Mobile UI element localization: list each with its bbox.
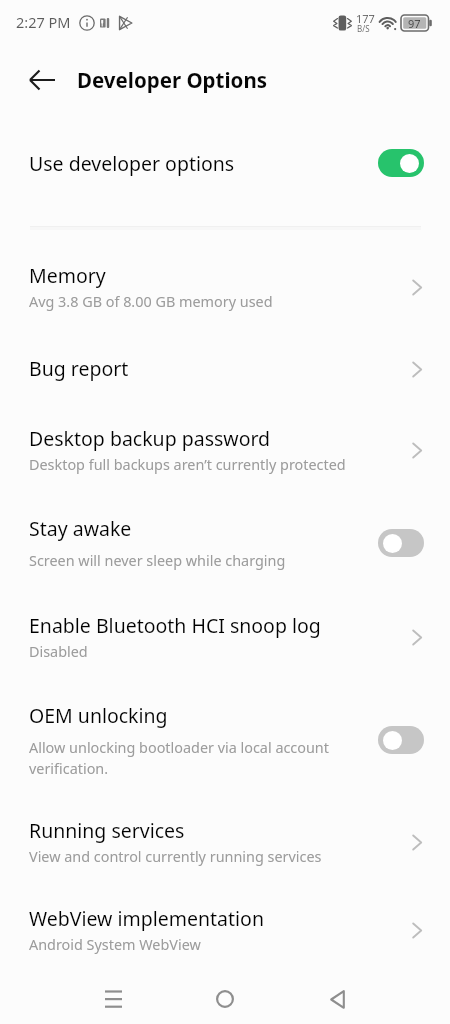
- staticText: Screen will never sleep while charging: [29, 551, 286, 571]
- button[interactable]: Use developer options: [0, 131, 450, 195]
- staticText: Allow unlocking bootloader via local acc…: [29, 738, 329, 778]
- button[interactable]: Enable Bluetooth HCI snoop log: [0, 600, 450, 674]
- staticText: Memory: [29, 262, 106, 289]
- button[interactable]: Recent apps: [85, 971, 141, 1024]
- staticText: Enable Bluetooth HCI snoop log: [29, 612, 321, 639]
- button[interactable]: Desktop backup password: [0, 413, 450, 487]
- button[interactable]: Stay awake: [0, 503, 450, 583]
- staticText: Developer Options: [77, 66, 268, 94]
- staticText: View and control currently running servi…: [29, 847, 322, 867]
- button[interactable]: Home: [197, 971, 253, 1024]
- staticText: OEM unlocking: [29, 702, 168, 729]
- button[interactable]: Switch off: [378, 529, 424, 557]
- staticText: B/S: [357, 23, 370, 34]
- button[interactable]: Bug report: [0, 343, 450, 394]
- button[interactable]: WebView implementation: [0, 893, 450, 967]
- button[interactable]: OEM unlocking: [0, 690, 450, 790]
- staticText: Desktop full backups aren’t currently pr…: [29, 455, 346, 475]
- staticText: Stay awake: [29, 515, 132, 542]
- staticText: WebView implementation: [29, 905, 264, 932]
- staticText: 2:27 PM: [16, 12, 71, 32]
- staticText: Desktop backup password: [29, 425, 271, 452]
- staticText: Bug report: [29, 355, 129, 382]
- button[interactable]: Running services: [0, 805, 450, 879]
- staticText: 97: [408, 16, 421, 31]
- staticText: Use developer options: [29, 150, 235, 177]
- staticText: Disabled: [29, 642, 88, 662]
- staticText: Avg 3.8 GB of 8.00 GB memory used: [29, 292, 273, 312]
- button[interactable]: Switch off: [378, 726, 424, 754]
- button[interactable]: Navigate back: [20, 58, 64, 102]
- staticText: Running services: [29, 817, 185, 844]
- button[interactable]: Switch on: [378, 149, 424, 177]
- button[interactable]: Back: [309, 971, 365, 1024]
- staticText: 177: [356, 11, 375, 26]
- staticText: Android System WebView: [29, 935, 201, 955]
- button[interactable]: Memory: [0, 250, 450, 324]
